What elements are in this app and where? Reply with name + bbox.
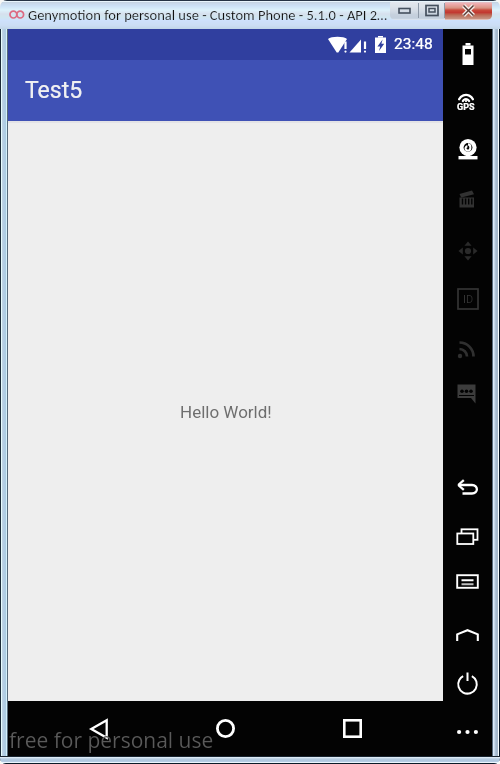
button[interactable]: More — [443, 709, 492, 755]
button[interactable]: Power — [443, 660, 492, 706]
button[interactable]: Network — [443, 325, 492, 371]
button[interactable]: Back — [35, 701, 162, 756]
button[interactable]: Minimize — [390, 2, 419, 20]
button[interactable]: Close — [445, 2, 492, 20]
button[interactable]: Recent apps — [443, 513, 492, 559]
staticText: Hello World! — [180, 402, 272, 422]
button[interactable]: Phone — [443, 371, 492, 417]
button[interactable]: Home — [443, 612, 492, 658]
button[interactable]: Battery — [443, 31, 492, 77]
button[interactable]: Accelerometer — [443, 228, 492, 274]
staticText: Test5 — [25, 77, 83, 104]
button[interactable]: Menu — [443, 558, 492, 604]
button[interactable]: Back — [443, 464, 492, 510]
button[interactable]: Recent apps — [289, 701, 416, 756]
staticText: GPS — [457, 102, 475, 113]
button[interactable]: Camera — [443, 127, 492, 173]
button[interactable]: GPS — [443, 79, 492, 125]
staticText: 23:48 — [394, 35, 433, 53]
staticText: free for personal use — [9, 726, 214, 755]
staticText: ID — [463, 293, 474, 306]
button[interactable]: Maximize — [419, 2, 445, 20]
button[interactable]: Screen record — [443, 177, 492, 223]
staticText: Genymotion for personal use - Custom Pho… — [28, 6, 388, 24]
button[interactable]: Identifiers — [443, 276, 492, 322]
button[interactable]: Home — [162, 701, 289, 756]
